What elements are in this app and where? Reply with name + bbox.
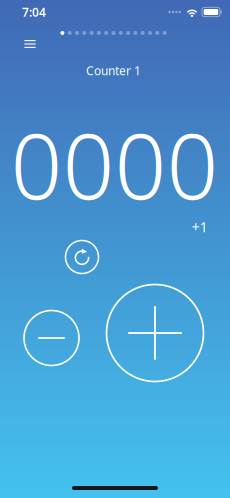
- staticText: 0000: [10, 104, 218, 224]
- staticText: Counter 1: [86, 62, 141, 78]
- button[interactable]: Decrement: [24, 310, 79, 365]
- staticText: 7:04: [22, 4, 46, 20]
- button[interactable]: Increment: [106, 284, 203, 381]
- button[interactable]: Menu: [17, 33, 43, 55]
- staticText: +1: [191, 217, 207, 236]
- button[interactable]: Reset counter: [65, 240, 98, 273]
